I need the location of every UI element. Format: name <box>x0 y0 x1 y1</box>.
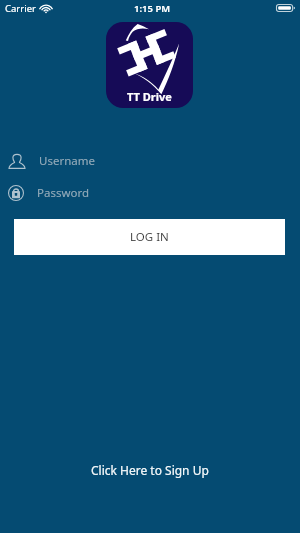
button[interactable]: Password <box>0 178 300 208</box>
staticText: 1:15 PM <box>134 2 171 15</box>
staticText: Password <box>37 185 90 201</box>
staticText: TT Drive <box>127 89 172 104</box>
staticText: Carrier <box>5 2 36 15</box>
button[interactable]: LOG IN <box>14 219 285 255</box>
button[interactable]: TT Drive <box>106 22 193 108</box>
staticText: Username <box>39 153 95 169</box>
staticText: Click Here to Sign Up <box>91 462 209 478</box>
button[interactable]: Username <box>0 146 300 176</box>
button[interactable]: Click Here to Sign Up <box>0 458 300 482</box>
staticText: LOG IN <box>130 229 169 245</box>
